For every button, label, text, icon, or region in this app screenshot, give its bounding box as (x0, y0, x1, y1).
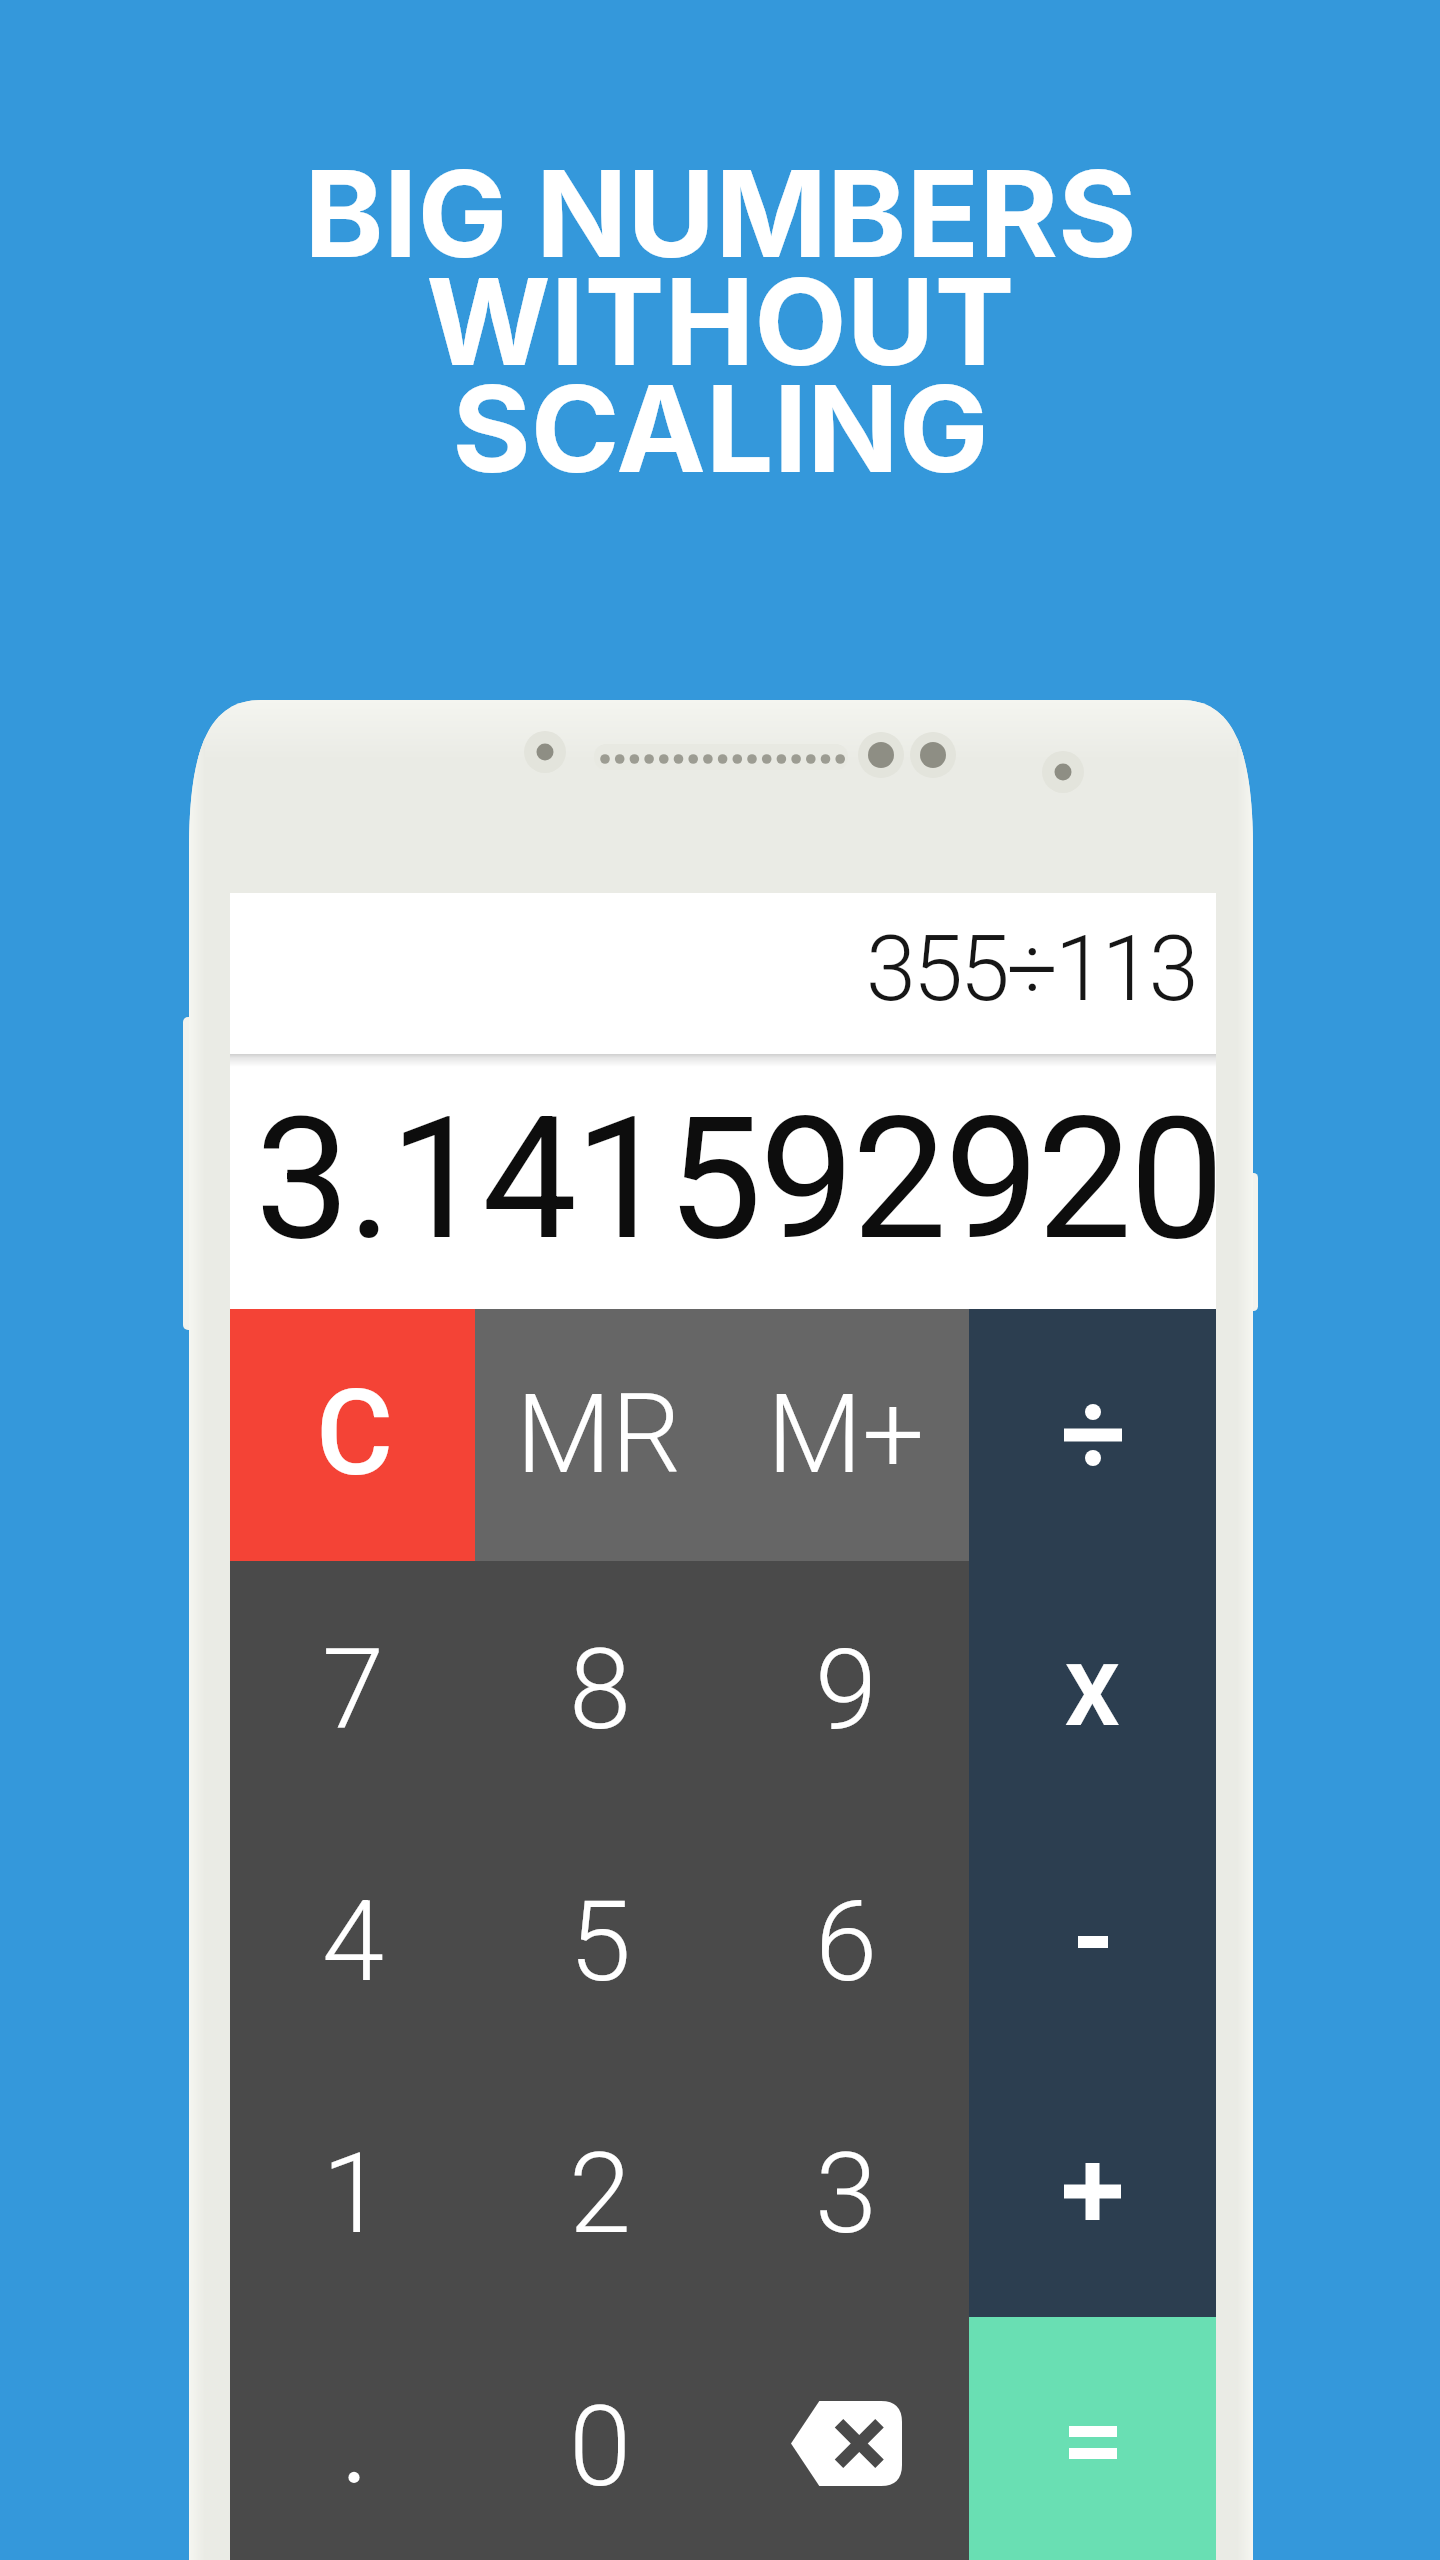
staticText: 6 (815, 1876, 878, 2007)
staticText: 1 (322, 2128, 385, 2259)
staticText: 4 (322, 1876, 385, 2007)
button[interactable]: 4 (230, 1813, 477, 2065)
staticText: 0 (569, 2381, 632, 2512)
staticText: 355÷113 (866, 917, 1196, 1022)
staticText: M+ (767, 1370, 925, 1499)
staticText: 2 (569, 2128, 632, 2259)
staticText: 3 (815, 2128, 878, 2259)
button[interactable]: Multiply (969, 1561, 1216, 1813)
button[interactable]: Decimal point (230, 2317, 477, 2560)
button[interactable]: 5 (477, 1813, 723, 2065)
staticText: 9 (815, 1624, 878, 1755)
staticText: C (316, 1365, 394, 1503)
button[interactable]: 1 (230, 2065, 477, 2317)
button[interactable]: 2 (477, 2065, 723, 2317)
button[interactable]: Divide (969, 1309, 1216, 1561)
staticText: 3.141592920 (255, 1080, 1222, 1278)
button[interactable]: C (230, 1309, 475, 1561)
staticText: X (1065, 1645, 1120, 1746)
button[interactable]: Backspace (723, 2322, 969, 2560)
button[interactable]: 9 (723, 1561, 969, 1813)
button[interactable]: 8 (477, 1561, 723, 1813)
button[interactable]: 6 (723, 1813, 969, 2065)
button[interactable]: 0 (477, 2317, 723, 2560)
button[interactable]: 3 (723, 2065, 969, 2317)
button[interactable]: M+ (722, 1309, 969, 1561)
button[interactable]: Equals (969, 2317, 1216, 2560)
button[interactable]: MR (475, 1309, 722, 1561)
staticText: 7 (322, 1624, 385, 1755)
staticText: BIG NUMBERS WITHOUT SCALING (304, 141, 1137, 501)
staticText: MR (516, 1370, 682, 1499)
button[interactable]: Plus (969, 2065, 1216, 2317)
staticText: 5 (569, 1876, 632, 2007)
staticText: 8 (569, 1624, 632, 1755)
button[interactable]: 7 (230, 1561, 477, 1813)
button[interactable]: Minus (969, 1813, 1216, 2065)
